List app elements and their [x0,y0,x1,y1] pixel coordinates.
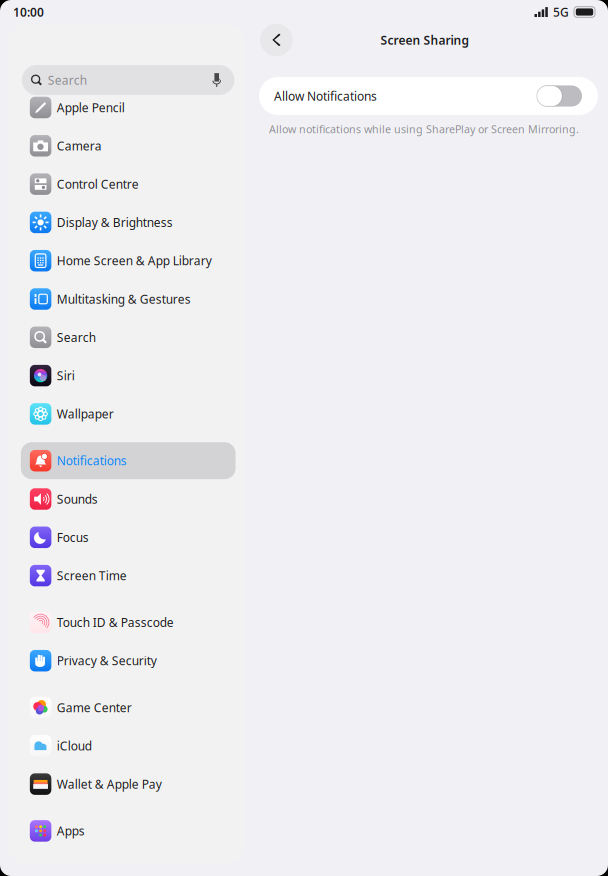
button[interactable]: Apps [16,812,236,849]
button[interactable]: Search [16,319,236,356]
button[interactable]: Camera [16,127,236,164]
staticText: Multitasking & Gestures [57,291,191,307]
staticText: Sounds [57,491,98,507]
staticText: 10:00 [13,4,44,20]
button[interactable]: Game Center [16,689,236,726]
staticText: Privacy & Security [57,653,157,669]
button[interactable]: Multitasking & Gestures [16,280,236,317]
staticText: Wallet & Apple Pay [57,776,162,792]
staticText: Screen Sharing [380,32,469,48]
button[interactable]: Back [260,24,293,56]
staticText: Focus [57,529,89,545]
staticText: Apps [57,823,85,839]
staticText: Search [57,329,96,345]
staticText: Siri [57,368,75,383]
staticText: Notifications [57,453,127,469]
staticText: Screen Time [57,568,127,583]
button[interactable]: Focus [16,519,236,556]
button[interactable]: Sounds [16,480,236,517]
staticText: iCloud [57,738,92,754]
staticText: Allow Notifications [274,88,377,104]
staticText: Camera [57,138,102,154]
button[interactable]: Touch ID & Passcode [16,604,236,641]
staticText: Home Screen & App Library [57,253,212,269]
button[interactable]: Apple Pencil [16,89,236,126]
button[interactable]: Notifications [16,442,236,479]
staticText: Search [48,72,87,88]
button[interactable]: Control Centre [16,166,236,203]
staticText: Apple Pencil [57,99,125,115]
button[interactable]: Display & Brightness [16,204,236,241]
staticText: Game Center [57,699,132,715]
staticText: 5G [553,4,569,20]
staticText: Allow notifications while using SharePla… [269,122,579,136]
button[interactable]: iCloud [16,727,236,764]
button[interactable]: Home Screen & App Library [16,242,236,279]
staticText: Wallpaper [57,406,114,422]
staticText: Display & Brightness [57,214,173,230]
staticText: Touch ID & Passcode [57,614,174,630]
button[interactable]: Wallet & Apple Pay [16,766,236,803]
button[interactable]: Privacy & Security [16,642,236,679]
button[interactable]: Screen Time [16,557,236,594]
button[interactable]: Allow Notifications [259,77,598,115]
button[interactable]: Wallpaper [16,395,236,432]
button[interactable]: Siri [16,357,236,394]
staticText: Control Centre [57,176,139,192]
